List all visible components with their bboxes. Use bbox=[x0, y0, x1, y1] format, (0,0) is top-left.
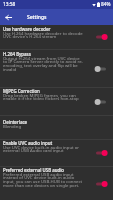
button[interactable]: H.264 Bypass bbox=[0, 50, 113, 87]
staticText: Use hardware decoder bbox=[3, 26, 51, 32]
staticText: Enable UVC audio input bbox=[3, 140, 53, 146]
staticText: Settings bbox=[27, 14, 47, 21]
staticText: Blending bbox=[3, 123, 22, 129]
button[interactable]: Deinterlace bbox=[0, 116, 113, 139]
button[interactable]: Preferred external USB audio bbox=[0, 167, 113, 200]
staticText: Preferred external USB audio bbox=[3, 167, 65, 173]
staticText: 13:58 bbox=[3, 1, 16, 8]
staticText: Use UVC device built-in audio input or e… bbox=[3, 144, 84, 153]
staticText: Drop broken MJPEG frames, you can enable… bbox=[3, 92, 84, 101]
staticText: Output H.264 stream from UVC device to I… bbox=[3, 55, 84, 72]
staticText: Deinterlace bbox=[3, 119, 28, 125]
staticText: Use H.264 hardware decoder to decode UVC… bbox=[3, 30, 84, 39]
staticText: H.264 Bypass bbox=[3, 51, 31, 57]
staticText: MJPEG Correction bbox=[3, 88, 40, 94]
button[interactable]: Back bbox=[0, 9, 16, 25]
staticText: Preferred external USB audio input inste… bbox=[3, 171, 84, 188]
button[interactable]: MJPEG Correction bbox=[0, 88, 113, 115]
button[interactable]: Enable UVC audio input bbox=[0, 140, 113, 166]
staticText: 84% bbox=[101, 1, 111, 8]
button[interactable]: Use hardware decoder bbox=[0, 25, 113, 49]
